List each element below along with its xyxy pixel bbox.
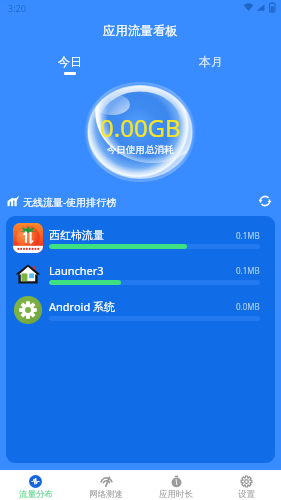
staticText: 流量分布 bbox=[19, 489, 53, 500]
button[interactable]: 本月 bbox=[140, 52, 281, 78]
staticText: 0.1MB bbox=[236, 230, 260, 241]
button[interactable]: Refresh bbox=[256, 192, 274, 210]
staticText: 0.1MB bbox=[236, 265, 260, 276]
staticText: 0.0MB bbox=[236, 301, 260, 312]
staticText: 今日使用总消耗 bbox=[107, 144, 174, 156]
button[interactable]: 网络测速 bbox=[71, 470, 141, 500]
staticText: 设置 bbox=[238, 489, 255, 500]
button[interactable]: 流量分布 bbox=[0, 470, 71, 500]
staticText: 西红柿流量 bbox=[49, 228, 104, 242]
staticText: 无线流量-使用排行榜 bbox=[23, 195, 117, 209]
staticText: 3:20 bbox=[8, 2, 26, 14]
button[interactable]: 西红柿流量 bbox=[6, 221, 275, 255]
button[interactable]: 设置 bbox=[211, 470, 281, 500]
button[interactable]: Android 系统 bbox=[6, 293, 275, 327]
staticText: 0.00GB bbox=[100, 111, 181, 144]
staticText: 本月 bbox=[199, 54, 223, 69]
button[interactable]: Launcher3 bbox=[6, 257, 275, 291]
button[interactable]: 今日 bbox=[0, 52, 140, 78]
staticText: 应用时长 bbox=[159, 489, 193, 500]
staticText: 今日 bbox=[58, 54, 82, 69]
staticText: Launcher3 bbox=[49, 263, 104, 278]
staticText: 网络测速 bbox=[89, 489, 123, 500]
button[interactable]: 应用时长 bbox=[141, 470, 211, 500]
staticText: 应用流量看板 bbox=[103, 23, 178, 39]
staticText: Android 系统 bbox=[49, 299, 116, 314]
